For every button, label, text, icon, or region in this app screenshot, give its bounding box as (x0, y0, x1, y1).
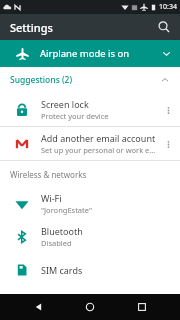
button[interactable]: Bluetooth (0, 220, 180, 253)
button[interactable]: SIM cards (0, 253, 180, 286)
button[interactable]: More options (158, 100, 178, 120)
staticText: Airplane mode is on (40, 47, 161, 60)
button[interactable]: More options (158, 134, 178, 154)
staticText: 10:34 (159, 2, 177, 12)
button[interactable]: Screen lock (0, 93, 180, 126)
staticText: Disabled (41, 238, 72, 248)
staticText: Screen lock (41, 98, 89, 110)
staticText: Add another email account (41, 132, 156, 144)
button[interactable]: Back (26, 294, 52, 320)
staticText: Protect your device (41, 111, 109, 121)
button[interactable]: Home (77, 294, 103, 320)
button[interactable]: Add another email account (0, 127, 180, 160)
staticText: Settings (10, 20, 53, 35)
button[interactable]: Search (152, 15, 176, 39)
staticText: "JorongEstate" (41, 205, 92, 215)
staticText: SIM cards (41, 264, 83, 276)
button[interactable]: Recent apps (129, 294, 155, 320)
button[interactable]: Suggestions (2) (0, 67, 180, 93)
staticText: Wi-Fi (41, 192, 62, 204)
button[interactable]: Airplane mode is on (0, 40, 180, 67)
staticText: Bluetooth (41, 225, 83, 237)
button[interactable]: Wi-Fi (0, 187, 180, 220)
staticText: Suggestions (2) (10, 74, 160, 86)
staticText: Set up your personal or work email (41, 145, 158, 155)
staticText: Wireless & networks (10, 169, 87, 180)
